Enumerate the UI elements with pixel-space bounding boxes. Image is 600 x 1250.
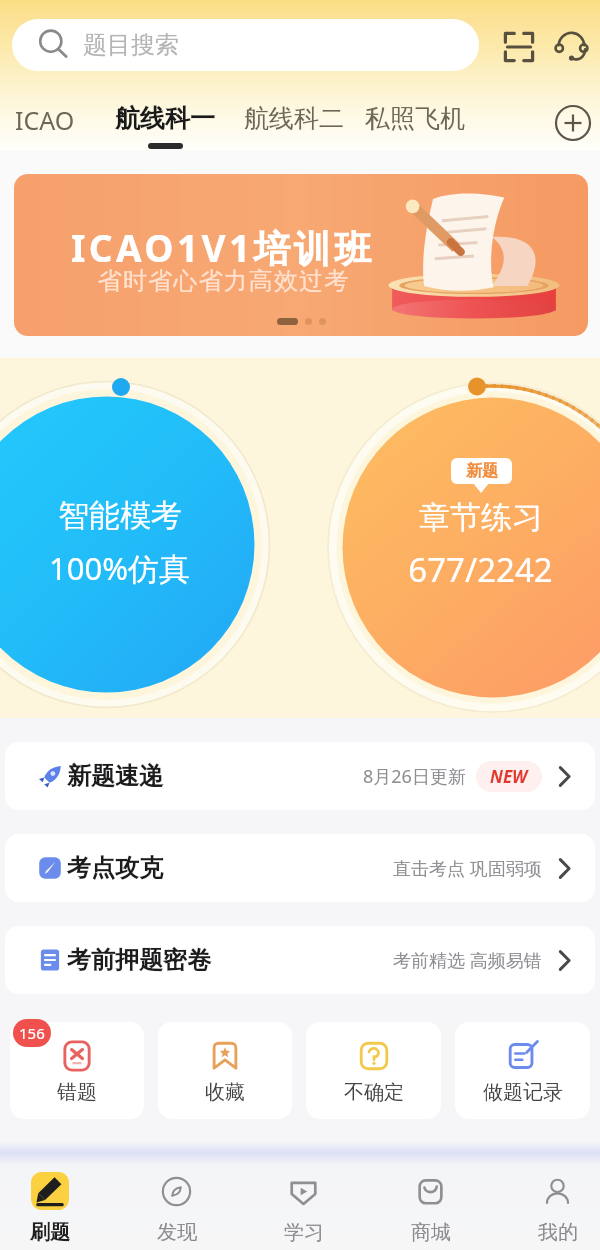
- staticText: 私照飞机: [365, 103, 465, 134]
- button[interactable]: Add subject: [554, 104, 592, 142]
- staticText: ICAO1V1培训班: [71, 222, 375, 273]
- button[interactable]: 做题记录: [455, 1022, 590, 1119]
- staticText: 新题: [466, 461, 498, 481]
- button[interactable]: 发现: [113, 1142, 240, 1250]
- staticText: 156: [19, 1023, 45, 1043]
- button[interactable]: Customer service: [546, 22, 596, 72]
- staticText: 题目搜索: [83, 30, 179, 60]
- button[interactable]: 考前押题密卷: [5, 926, 595, 994]
- staticText: 章节练习: [419, 498, 543, 537]
- button[interactable]: 商城: [367, 1142, 494, 1250]
- staticText: 航线科一: [115, 103, 215, 134]
- staticText: 发现: [157, 1220, 197, 1245]
- button[interactable]: [343, 398, 600, 698]
- staticText: 商城: [411, 1220, 451, 1245]
- staticText: 8月26日更新: [363, 764, 466, 789]
- staticText: 新题速递: [67, 761, 163, 791]
- button[interactable]: 题目搜索: [12, 19, 479, 71]
- staticText: 收藏: [205, 1080, 245, 1105]
- staticText: 智能模考: [58, 496, 182, 535]
- staticText: 学习: [284, 1220, 324, 1245]
- staticText: 我的: [538, 1220, 578, 1245]
- button[interactable]: 学习: [240, 1142, 367, 1250]
- button[interactable]: 考点攻克: [5, 834, 595, 902]
- staticText: 677/2242: [408, 547, 553, 592]
- staticText: 错题: [57, 1080, 97, 1105]
- staticText: ICAO: [15, 103, 75, 137]
- staticText: 做题记录: [483, 1080, 563, 1105]
- button[interactable]: 航线科二: [244, 103, 344, 134]
- button[interactable]: ICAO: [15, 103, 75, 137]
- button[interactable]: [0, 358, 600, 718]
- staticText: 不确定: [344, 1080, 404, 1105]
- button[interactable]: 收藏: [158, 1022, 292, 1119]
- button[interactable]: 错题: [10, 1022, 144, 1119]
- button[interactable]: 私照飞机: [365, 103, 465, 134]
- staticText: 省时省心省力高效过考: [97, 266, 349, 296]
- button[interactable]: 新题速递: [5, 742, 595, 810]
- button[interactable]: 不确定: [306, 1022, 441, 1119]
- staticText: 考前精选 高频易错: [393, 948, 542, 973]
- staticText: NEW: [490, 765, 528, 788]
- staticText: 航线科二: [244, 103, 344, 134]
- button[interactable]: Scan code: [494, 22, 544, 72]
- staticText: 考点攻克: [67, 853, 163, 883]
- staticText: 直击考点 巩固弱项: [393, 856, 542, 881]
- staticText: 刷题: [30, 1220, 70, 1245]
- staticText: 考前押题密卷: [67, 945, 211, 975]
- button[interactable]: 航线科一: [115, 103, 215, 149]
- button[interactable]: 刷题: [0, 1142, 113, 1250]
- staticText: 100%仿真: [49, 547, 190, 589]
- button[interactable]: ICAO1V1培训班: [14, 174, 588, 336]
- button[interactable]: 我的: [494, 1142, 600, 1250]
